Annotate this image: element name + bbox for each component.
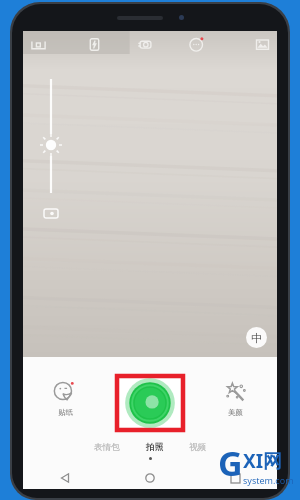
button[interactable]: Gallery	[251, 33, 273, 55]
staticText: 美颜	[228, 408, 243, 417]
staticText: 视频	[189, 442, 206, 453]
button[interactable]	[116, 375, 184, 431]
button[interactable]: 美颜	[218, 375, 252, 421]
staticText: XI网	[243, 448, 283, 474]
button[interactable]: 表情包	[91, 441, 123, 454]
staticText: 表情包	[94, 442, 120, 453]
staticText: 贴纸	[58, 408, 73, 417]
button[interactable]: 中	[246, 327, 267, 348]
button[interactable]: Home	[140, 468, 160, 488]
button[interactable]: Aspect ratio	[27, 33, 49, 55]
button[interactable]: 拍照	[143, 441, 166, 454]
button[interactable]: Flash	[83, 33, 105, 55]
staticText: 中	[251, 331, 262, 345]
staticText: system.com	[243, 474, 294, 486]
staticText: G	[218, 440, 243, 486]
staticText: 拍照	[146, 442, 163, 453]
button[interactable]: Recents	[225, 468, 245, 488]
button[interactable]: 视频	[186, 441, 209, 454]
button[interactable]: Back	[55, 468, 75, 488]
button[interactable]: Switch camera	[134, 33, 156, 55]
button[interactable]: More options	[185, 33, 207, 55]
button[interactable]: 贴纸	[48, 375, 82, 421]
